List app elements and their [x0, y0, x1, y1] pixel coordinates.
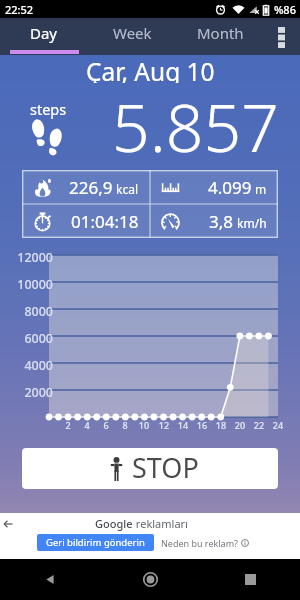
staticText: 4 — [77, 419, 97, 431]
staticText: m — [252, 181, 267, 197]
staticText: 12000 — [0, 249, 53, 266]
staticText: km/h — [234, 215, 267, 231]
staticText: 20 — [230, 419, 250, 431]
staticText: 5.857 — [112, 81, 279, 171]
button[interactable]: STOP — [22, 448, 278, 489]
staticText: 12 — [154, 419, 174, 431]
button[interactable]: Recent apps — [200, 559, 300, 600]
button[interactable]: 226,9 — [22, 170, 150, 204]
button[interactable]: Week — [88, 18, 176, 55]
staticText: 8000 — [0, 303, 53, 320]
staticText: 8 — [115, 419, 135, 431]
button[interactable]: 01:04:18 — [22, 204, 150, 238]
staticText: Neden bu reklam? — [161, 537, 238, 549]
button[interactable]: Home — [100, 559, 200, 600]
staticText: STOP — [132, 449, 199, 486]
staticText: 226,9 — [69, 176, 113, 199]
staticText: Day — [30, 23, 58, 43]
staticText: steps — [30, 99, 67, 119]
staticText: Week — [113, 23, 152, 43]
staticText: 22:52 — [5, 2, 34, 17]
staticText: kcal — [113, 181, 139, 197]
staticText: 3,8 — [209, 210, 234, 233]
staticText: Çar, Aug 10 — [86, 55, 215, 83]
staticText: reklamları — [133, 516, 188, 531]
staticText: 4.099 — [208, 176, 252, 199]
staticText: 24 — [268, 419, 288, 431]
staticText: Month — [197, 23, 244, 43]
staticText: 01:04:18 — [71, 210, 139, 233]
button[interactable]: More options — [264, 18, 300, 55]
staticText: 6000 — [0, 330, 53, 347]
staticText: 4000 — [0, 357, 53, 374]
staticText: 22 — [249, 419, 269, 431]
staticText: 6 — [96, 419, 116, 431]
staticText: 14 — [173, 419, 193, 431]
staticText: 2000 — [0, 384, 53, 401]
staticText: 2 — [58, 419, 78, 431]
staticText: 10 — [134, 419, 154, 431]
button[interactable]: 3,8 — [150, 204, 278, 238]
button[interactable]: Month — [176, 18, 264, 55]
staticText: 10000 — [0, 276, 53, 293]
button[interactable]: Neden bu reklam? — [161, 537, 249, 549]
staticText: 16 — [192, 419, 212, 431]
button[interactable]: 4.099 — [150, 170, 278, 204]
button[interactable]: Back — [0, 559, 100, 600]
button[interactable]: Back — [0, 513, 22, 534]
staticText: Google — [95, 516, 133, 531]
staticText: Geri bildirim gönderin — [46, 536, 145, 549]
button[interactable]: Day — [0, 18, 88, 55]
button[interactable]: Geri bildirim gönderin — [37, 534, 154, 551]
staticText: 18 — [211, 419, 231, 431]
staticText: %86 — [274, 2, 296, 17]
